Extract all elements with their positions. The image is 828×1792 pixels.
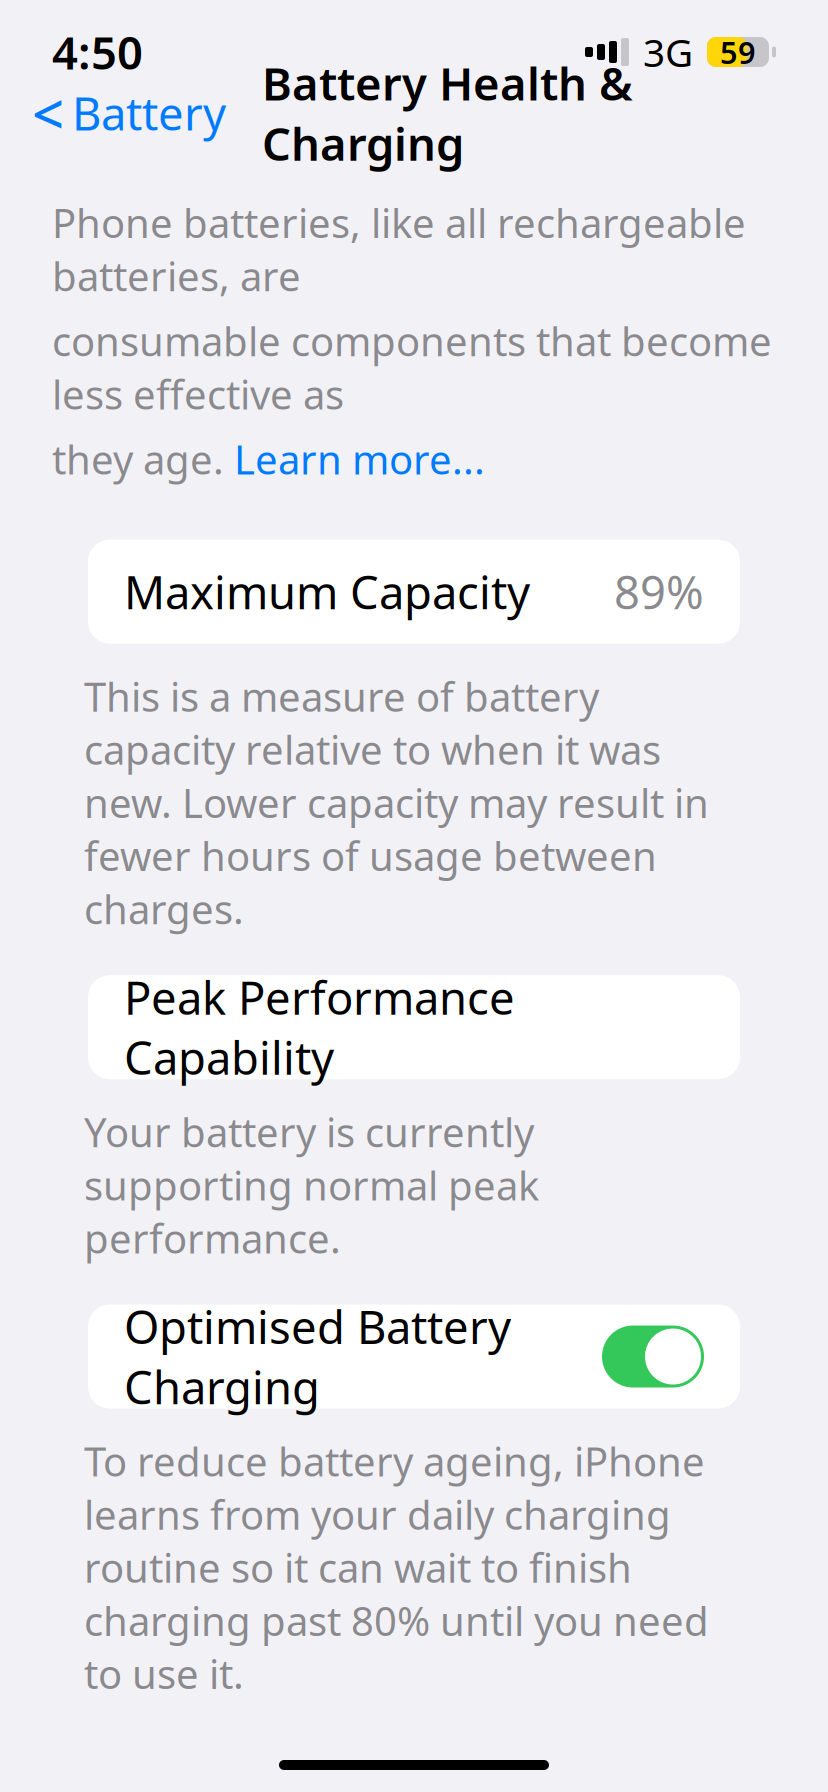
staticText: To reduce battery ageing, iPhone learns … [84, 1434, 709, 1700]
button[interactable]: Optimised Battery Charging toggle, on [602, 1325, 704, 1387]
staticText: 89% [614, 561, 704, 622]
staticText: Battery [72, 83, 226, 143]
button[interactable]: Maximum Capacity [88, 540, 740, 644]
staticText: consumable components that become less e… [52, 314, 772, 420]
staticText: 3G [643, 26, 693, 78]
staticText: Peak Performance Capability [124, 967, 515, 1087]
staticText: Your battery is currently supporting nor… [84, 1105, 539, 1265]
staticText: Maximum Capacity [124, 561, 530, 622]
staticText: This is a measure of battery capacity re… [84, 670, 709, 935]
staticText: Learn more... [234, 432, 485, 486]
button[interactable]: Peak Performance Capability [88, 975, 740, 1079]
staticText: they age. [52, 432, 234, 486]
staticText: 59 [720, 32, 756, 72]
staticText: 4:50 [52, 22, 143, 82]
staticText: < [32, 76, 64, 150]
staticText: Optimised Battery Charging [124, 1296, 511, 1417]
button[interactable]: < [26, 68, 232, 158]
staticText: Battery Health & Charging [262, 53, 633, 173]
button[interactable]: Learn more... [234, 432, 485, 486]
staticText: Phone batteries, like all rechargeable b… [52, 196, 746, 302]
